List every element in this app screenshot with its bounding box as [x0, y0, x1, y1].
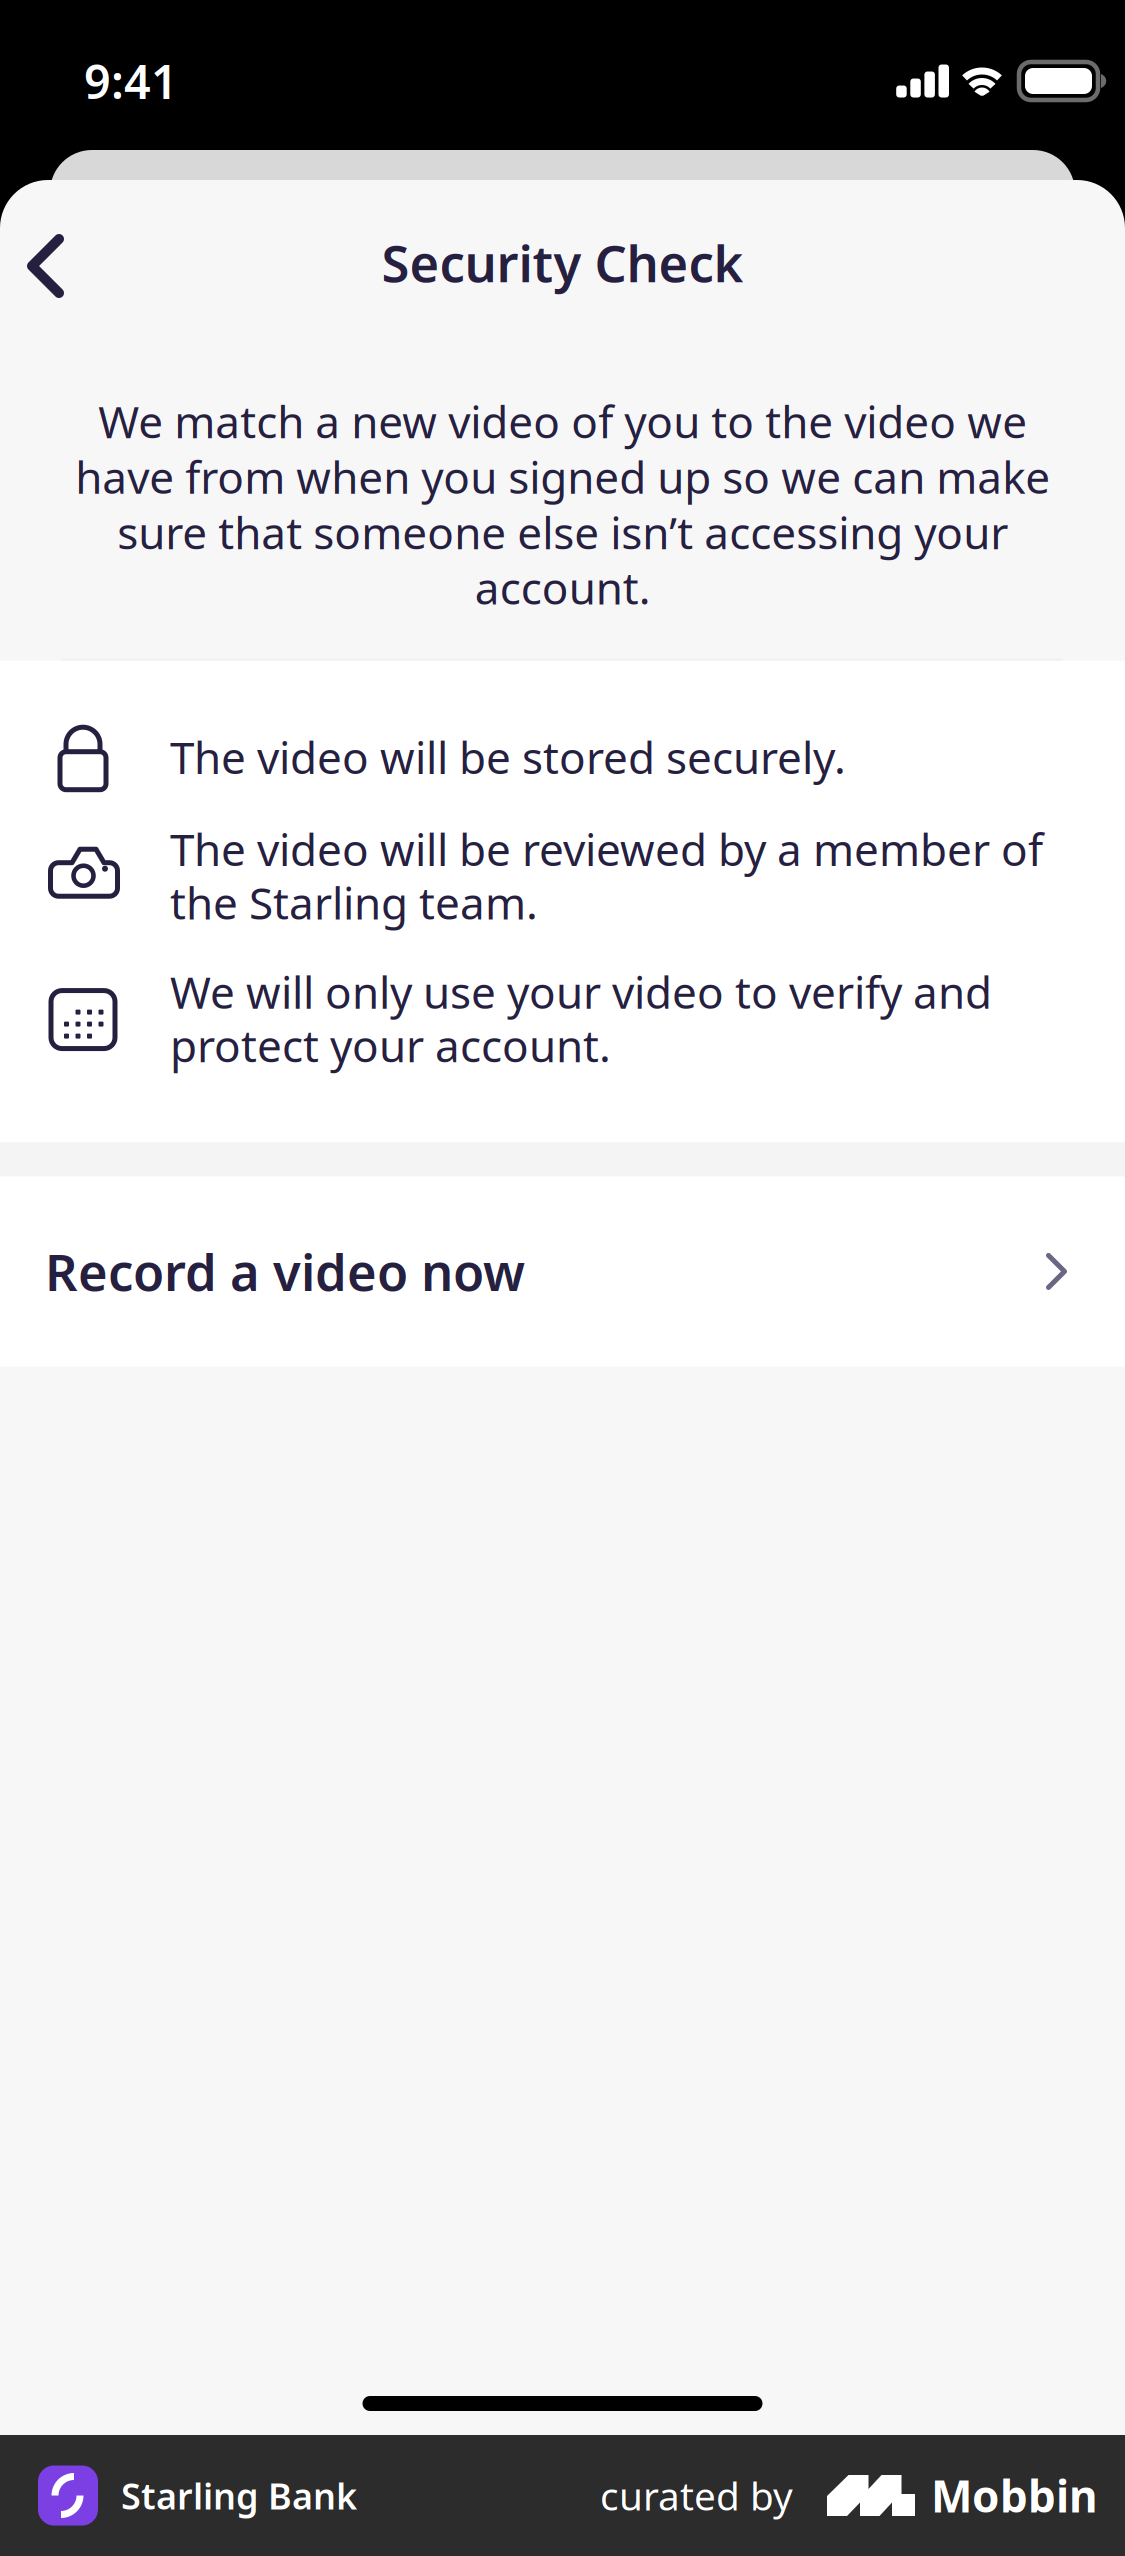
staticText: Mobbin — [931, 2466, 1098, 2525]
button[interactable]: Back — [0, 179, 99, 327]
staticText: curated by — [600, 2470, 793, 2521]
button[interactable]: Record a video now — [0, 1176, 1125, 1366]
staticText: Starling Bank — [121, 2472, 357, 2519]
staticText: We match a new video of you to the video… — [75, 392, 1050, 617]
staticText: The video will be reviewed by a member o… — [170, 820, 1043, 932]
staticText: 9:41 — [84, 50, 178, 112]
staticText: Record a video now — [45, 1238, 525, 1305]
staticText: Security Check — [381, 229, 743, 296]
staticText: The video will be stored securely. — [170, 728, 846, 786]
staticText: We will only use your video to verify an… — [170, 963, 992, 1074]
